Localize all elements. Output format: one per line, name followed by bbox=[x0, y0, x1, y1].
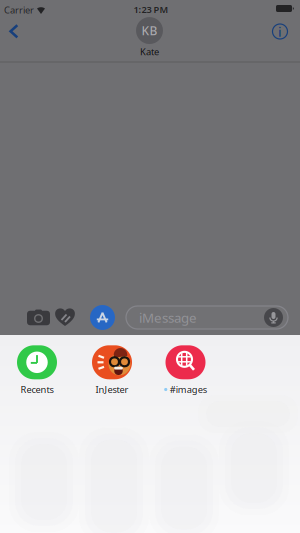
staticText: 1:23 PM bbox=[133, 3, 168, 16]
staticText: Kate bbox=[140, 46, 159, 58]
button[interactable]: Digital Touch bbox=[54, 308, 75, 327]
button[interactable]: #images bbox=[164, 345, 207, 396]
staticText: Carrier bbox=[4, 4, 34, 16]
button[interactable]: Back bbox=[3, 17, 25, 45]
button[interactable]: InJester bbox=[92, 345, 132, 396]
staticText: i bbox=[278, 23, 282, 40]
button[interactable]: Details bbox=[270, 21, 290, 41]
staticText: InJester bbox=[95, 383, 128, 396]
button[interactable]: iMessage App Store bbox=[90, 305, 115, 330]
staticText: #images bbox=[170, 383, 207, 396]
button[interactable]: Camera bbox=[27, 309, 50, 326]
staticText: iMessage bbox=[139, 309, 197, 326]
staticText: Recents bbox=[20, 383, 53, 396]
staticText: KB bbox=[141, 23, 157, 38]
button[interactable]: iMessage text field bbox=[126, 306, 288, 329]
button[interactable]: Kate bbox=[136, 17, 163, 58]
button[interactable]: Recents bbox=[17, 345, 57, 396]
